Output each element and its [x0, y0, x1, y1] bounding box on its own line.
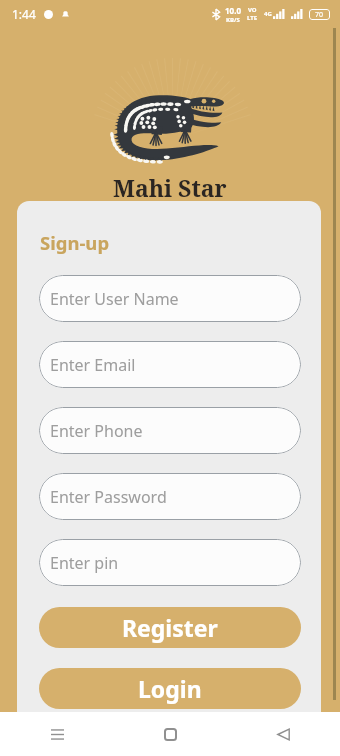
staticText: Enter pin: [50, 552, 119, 574]
button[interactable]: Enter Email: [39, 341, 301, 388]
staticText: Enter Password: [50, 486, 167, 508]
button[interactable]: Enter User Name: [39, 275, 301, 322]
button[interactable]: Login: [39, 668, 301, 709]
staticText: Enter Phone: [50, 420, 143, 442]
staticText: LTE: [247, 14, 258, 22]
button[interactable]: Home: [114, 712, 227, 756]
staticText: Sign-up: [40, 230, 110, 255]
staticText: 4G: [264, 10, 272, 18]
button[interactable]: Enter Password: [39, 473, 301, 520]
button[interactable]: Enter Phone: [39, 407, 301, 454]
staticText: 10.0: [225, 5, 241, 16]
staticText: Login: [138, 673, 202, 704]
staticText: KB/S: [226, 16, 240, 24]
staticText: Enter User Name: [50, 288, 179, 310]
button[interactable]: Back: [227, 712, 340, 756]
staticText: VO: [248, 6, 257, 14]
button[interactable]: Recent apps: [0, 712, 114, 756]
staticText: 1:44: [12, 6, 36, 22]
staticText: Register: [122, 612, 218, 643]
button[interactable]: Enter pin: [39, 539, 301, 586]
staticText: 70: [315, 10, 324, 20]
staticText: Enter Email: [50, 354, 136, 376]
staticText: Mahi Star: [113, 172, 227, 203]
button[interactable]: Register: [39, 607, 301, 648]
